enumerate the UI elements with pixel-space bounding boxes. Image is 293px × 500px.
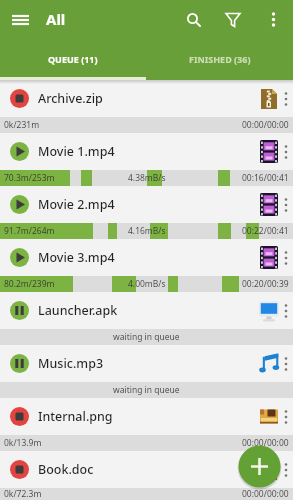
staticText: 80.2m/239m [4, 278, 55, 290]
button[interactable]: Archive.zip [0, 80, 293, 133]
staticText: Movie 2.mp4 [38, 196, 115, 213]
button[interactable]: Book.doc [0, 451, 293, 500]
button[interactable]: QUEUE (11) [0, 38, 146, 80]
staticText: Movie 1.mp4 [38, 143, 115, 160]
staticText: waiting in queue [113, 384, 180, 396]
button[interactable] [6, 8, 34, 32]
staticText: Internal.png [38, 408, 113, 425]
button[interactable]: Movie 3.mp4 [0, 239, 293, 292]
staticText: Music.mp3 [38, 355, 104, 372]
staticText: 0k/72.3m [4, 488, 42, 500]
staticText: waiting in queue [113, 331, 180, 343]
button[interactable]: Music.mp3 [0, 345, 293, 398]
staticText: All [46, 9, 66, 29]
staticText: 00:22/00:41 [242, 225, 289, 237]
button[interactable]: FINISHED (36) [146, 38, 293, 80]
staticText: 00:00/00:00 [242, 119, 289, 131]
staticText: FINISHED (36) [189, 53, 251, 65]
staticText: 0k/13.9m [4, 437, 42, 449]
staticText: 00:00/00:00 [242, 488, 289, 500]
staticText: Launcher.apk [38, 302, 118, 319]
staticText: 4.00mB/s [128, 278, 166, 290]
staticText: 4.38mB/s [128, 172, 166, 184]
staticText: Book.doc [38, 461, 94, 478]
staticText: 00:16/00:41 [242, 172, 289, 184]
staticText: Movie 3.mp4 [38, 249, 115, 266]
button[interactable]: Movie 2.mp4 [0, 186, 293, 239]
button[interactable]: Internal.png [0, 398, 293, 451]
staticText: 91.7m/264m [4, 225, 55, 237]
button[interactable] [236, 443, 283, 490]
staticText: 00:00/00:00 [242, 437, 289, 449]
button[interactable] [260, 6, 288, 34]
staticText: 00:20/00:39 [242, 278, 289, 290]
button[interactable] [220, 6, 248, 34]
staticText: 4.16mB/s [128, 225, 166, 237]
button[interactable] [180, 6, 208, 34]
button[interactable]: Movie 1.mp4 [0, 133, 293, 186]
staticText: 70.3m/253m [4, 172, 55, 184]
staticText: QUEUE (11) [48, 53, 98, 65]
staticText: Archive.zip [38, 90, 103, 107]
button[interactable]: Launcher.apk [0, 292, 293, 345]
staticText: 0k/231m [4, 119, 40, 131]
